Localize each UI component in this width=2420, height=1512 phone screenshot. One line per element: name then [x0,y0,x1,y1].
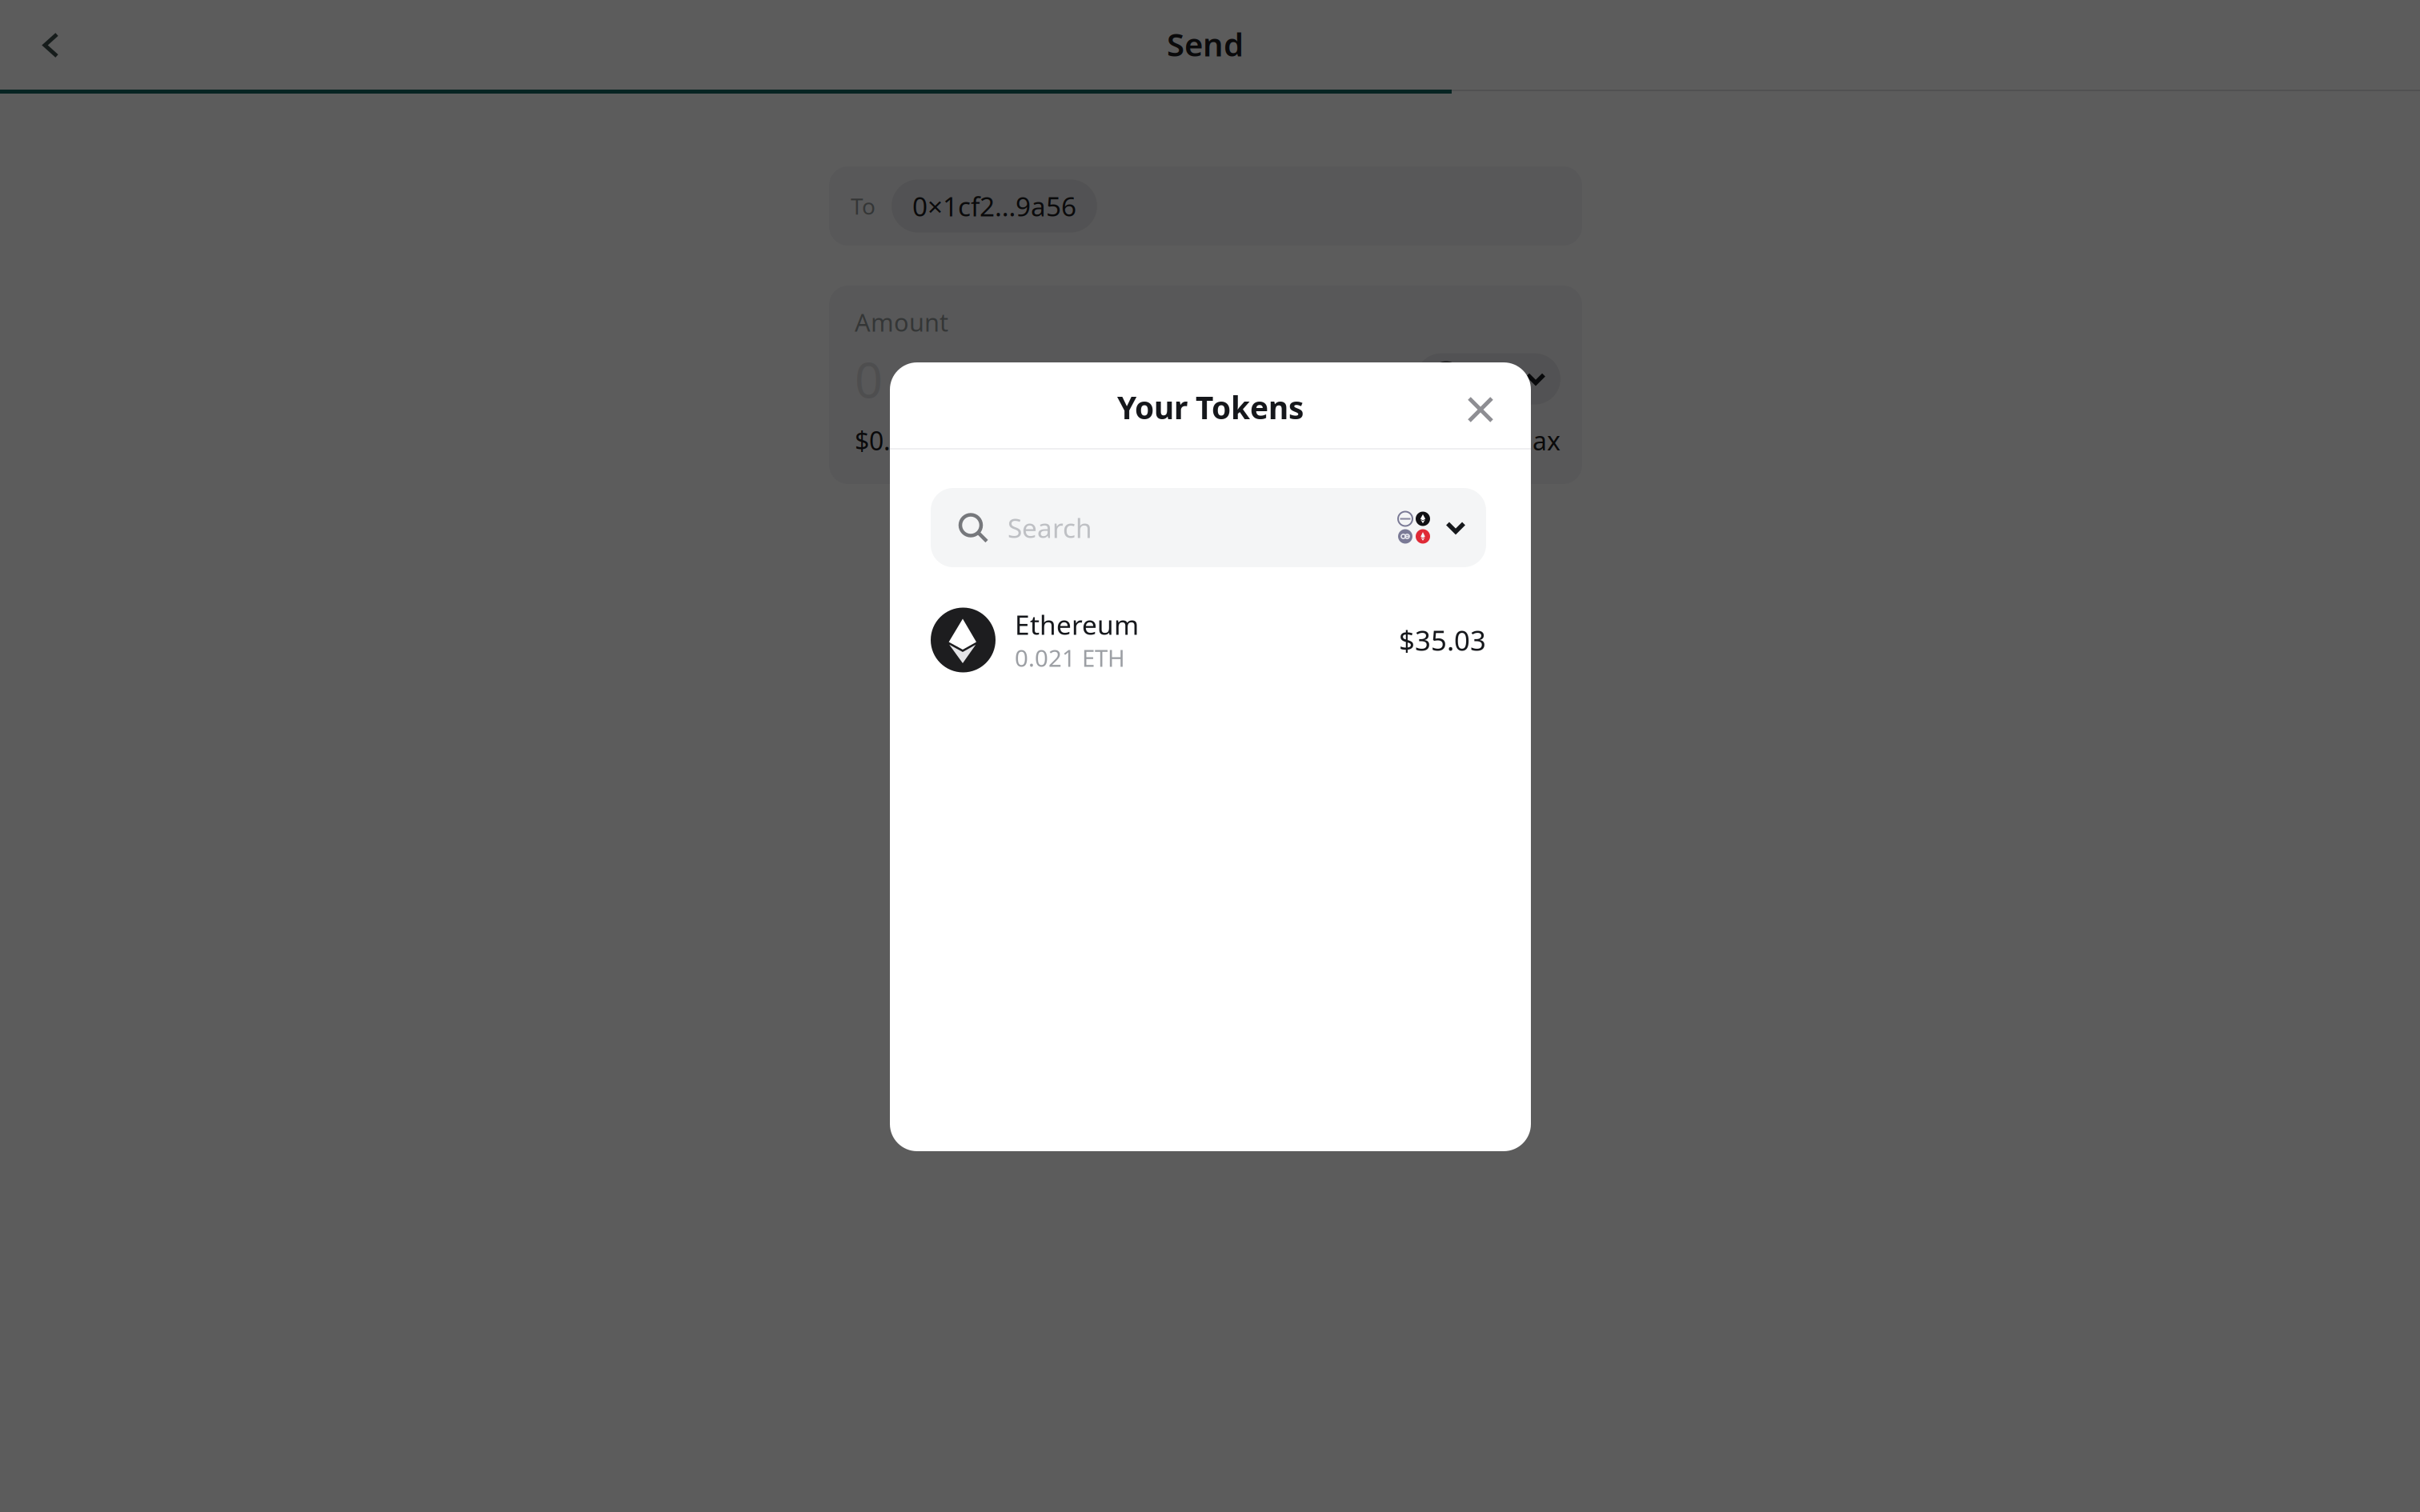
staticText: $35.03 [1399,622,1486,658]
staticText: 0×1cf2…9a56 [912,188,1076,224]
staticText: Search [1008,510,1092,545]
button[interactable]: Ethereum [931,600,1486,680]
button[interactable]: Back [22,11,81,80]
staticText: $0.00 [855,423,920,457]
staticText: Send [1167,23,1244,65]
staticText: Amount [855,306,948,338]
staticText: Ethereum [1015,607,1139,642]
staticText: Your Tokens [1117,387,1304,428]
staticText: ETH [1472,363,1517,395]
staticText: Max [1509,423,1561,457]
staticText: 0 [855,346,883,411]
staticText: 0.021 ETH [1015,642,1125,673]
button[interactable]: Close [1448,377,1513,442]
staticText: To [851,191,875,221]
